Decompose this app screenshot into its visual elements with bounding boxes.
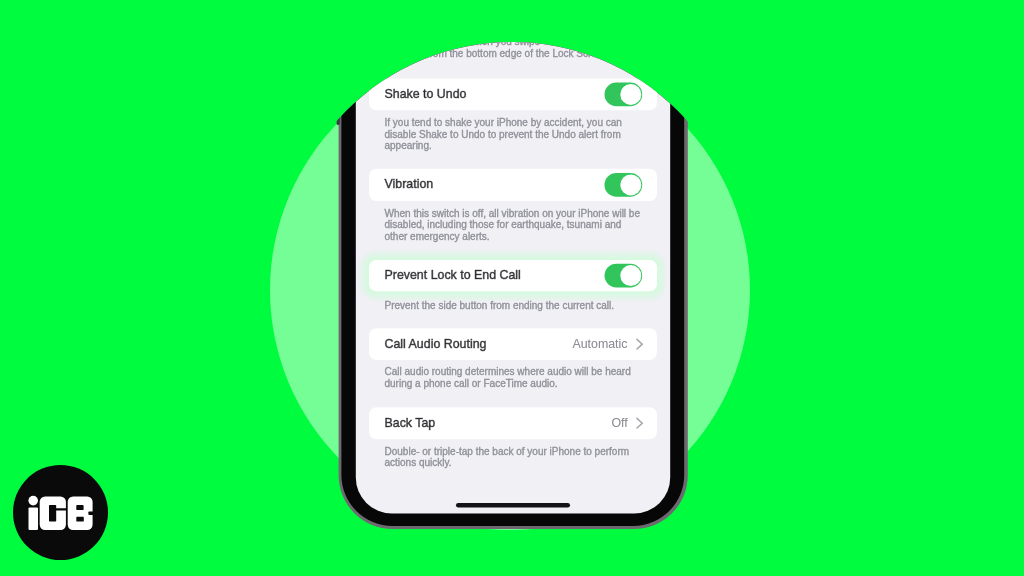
button[interactable]: iGeeksBlog logo [13, 465, 108, 560]
other: iPhone accessibility settings screenshot [0, 0, 1024, 576]
